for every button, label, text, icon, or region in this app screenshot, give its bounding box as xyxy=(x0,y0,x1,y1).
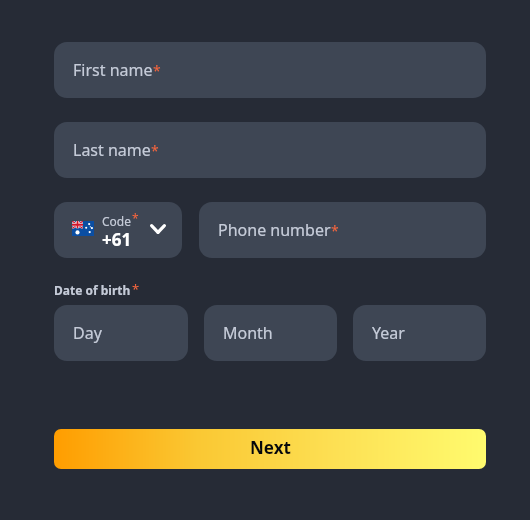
staticText: Code xyxy=(102,213,131,229)
staticText: Month xyxy=(223,322,273,344)
button[interactable]: Month xyxy=(204,305,337,361)
staticText: * xyxy=(132,280,140,298)
button[interactable]: Last name xyxy=(54,122,486,178)
button[interactable]: Code xyxy=(54,202,182,258)
staticText: Last name xyxy=(73,139,151,161)
staticText: Next xyxy=(250,436,291,459)
staticText: * xyxy=(132,210,139,226)
staticText: Day xyxy=(73,322,102,344)
staticText: +61 xyxy=(102,228,132,251)
staticText: * xyxy=(331,221,339,240)
staticText: * xyxy=(151,141,159,160)
staticText: Year xyxy=(372,322,405,344)
staticText: * xyxy=(153,61,161,80)
other: Select country code xyxy=(150,224,166,234)
button[interactable]: Phone number xyxy=(199,202,486,258)
staticText: First name xyxy=(73,59,153,81)
button[interactable]: Day xyxy=(54,305,188,361)
button[interactable]: Year xyxy=(353,305,486,361)
staticText: Phone number xyxy=(218,219,331,241)
button[interactable]: Next xyxy=(54,429,486,469)
button[interactable]: First name xyxy=(54,42,486,98)
staticText: Date of birth xyxy=(54,282,131,298)
